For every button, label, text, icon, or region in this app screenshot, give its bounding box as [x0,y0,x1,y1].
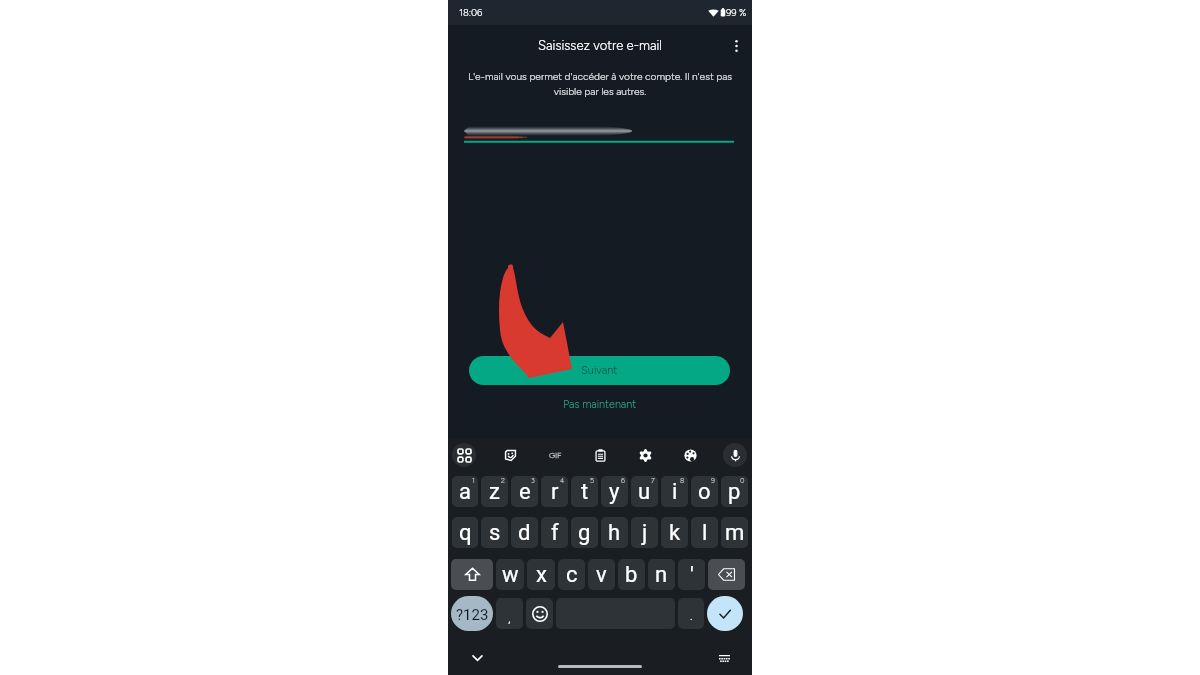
button[interactable]: l [691,517,718,548]
button[interactable]: Clipboard [588,443,612,467]
staticText: s [489,520,501,546]
button[interactable]: t [571,476,598,507]
staticText: b [625,562,638,588]
button[interactable]: w [496,559,524,590]
staticText: a [459,479,471,505]
button[interactable]: Shift [451,559,493,590]
button[interactable]: j [631,517,658,548]
button[interactable]: Change keyboard [714,648,734,668]
button[interactable]: Emoji [526,598,553,629]
staticText: 18:06 [459,7,483,18]
button[interactable]: u [631,476,658,507]
staticText: r [551,479,559,505]
button[interactable]: ?123 [451,596,493,631]
button[interactable]: d [511,517,538,548]
staticText: 7 [651,476,655,484]
button[interactable]: n [648,559,675,590]
staticText: x [536,562,547,588]
staticText: 4 [560,476,565,484]
staticText: m [725,520,745,546]
staticText: v [596,562,607,588]
button[interactable]: z [481,476,508,507]
staticText: q [459,520,472,546]
button[interactable]: f [541,517,568,548]
staticText: c [566,562,578,588]
button[interactable]: b [618,559,645,590]
button[interactable]: q [452,517,478,548]
staticText: 5 [590,476,595,484]
button[interactable]: y [601,476,628,507]
staticText: Saisissez votre e-mail [538,38,663,54]
staticText: . [690,609,693,623]
button[interactable]: Stickers [498,443,522,467]
staticText: y [609,479,620,505]
button[interactable]: ' [678,559,705,590]
button[interactable]: r [541,476,568,507]
staticText: d [518,520,531,546]
staticText: ' [690,562,694,588]
button[interactable]: s [481,517,508,548]
staticText: z [489,479,500,505]
button[interactable]: g [571,517,598,548]
staticText: l [702,520,708,546]
staticText: p [728,479,741,505]
button[interactable]: More options [726,36,746,56]
staticText: o [698,479,711,505]
staticText: w [502,562,519,588]
staticText: 6 [621,476,625,484]
staticText: g [578,520,591,546]
staticText: i [672,479,678,505]
staticText: n [655,562,668,588]
staticText: f [551,520,559,546]
staticText: h [608,520,621,546]
staticText: GIF [549,450,562,460]
button[interactable]: c [558,559,585,590]
staticText: L'e-mail vous permet d'accéder à votre c… [464,70,736,97]
button[interactable]: Backspace [708,559,745,590]
button[interactable]: m [721,517,748,548]
button[interactable]: Hide keyboard [467,648,487,668]
staticText: 8 [680,476,685,484]
button[interactable]: i [661,476,688,507]
staticText: Suivant [581,364,618,377]
button[interactable]: Enter [707,596,743,631]
staticText: t [581,479,589,505]
staticText: u [638,479,651,505]
button[interactable]: Suivant [469,356,730,385]
button[interactable]: v [588,559,615,590]
staticText: , [508,612,511,626]
staticText: 3 [531,476,535,484]
button[interactable]: a [452,476,478,507]
button[interactable]: Open features menu [452,443,476,467]
button[interactable]: x [527,559,555,590]
staticText: 2 [501,476,505,484]
button[interactable]: Themes [678,443,702,467]
button[interactable]: e [511,476,538,507]
staticText: Pas maintenant [563,398,637,411]
button[interactable]: h [601,517,628,548]
staticText: 99 % [726,7,747,18]
button[interactable]: , [496,598,523,629]
button[interactable]: . [678,598,704,629]
staticText: 1 [472,476,475,484]
staticText: j [642,520,648,546]
staticText: k [669,520,681,546]
button[interactable]: p [721,476,748,507]
button[interactable]: Voice input [723,443,747,467]
button[interactable]: k [661,517,688,548]
button[interactable]: Settings [633,443,657,467]
staticText: e [519,479,531,505]
button[interactable]: Pas maintenant [557,396,643,413]
button[interactable]: GIF [543,443,567,467]
button[interactable]: o [691,476,718,507]
staticText: 9 [711,476,715,484]
staticText: 0 [740,476,745,484]
staticText: ?123 [456,606,489,624]
